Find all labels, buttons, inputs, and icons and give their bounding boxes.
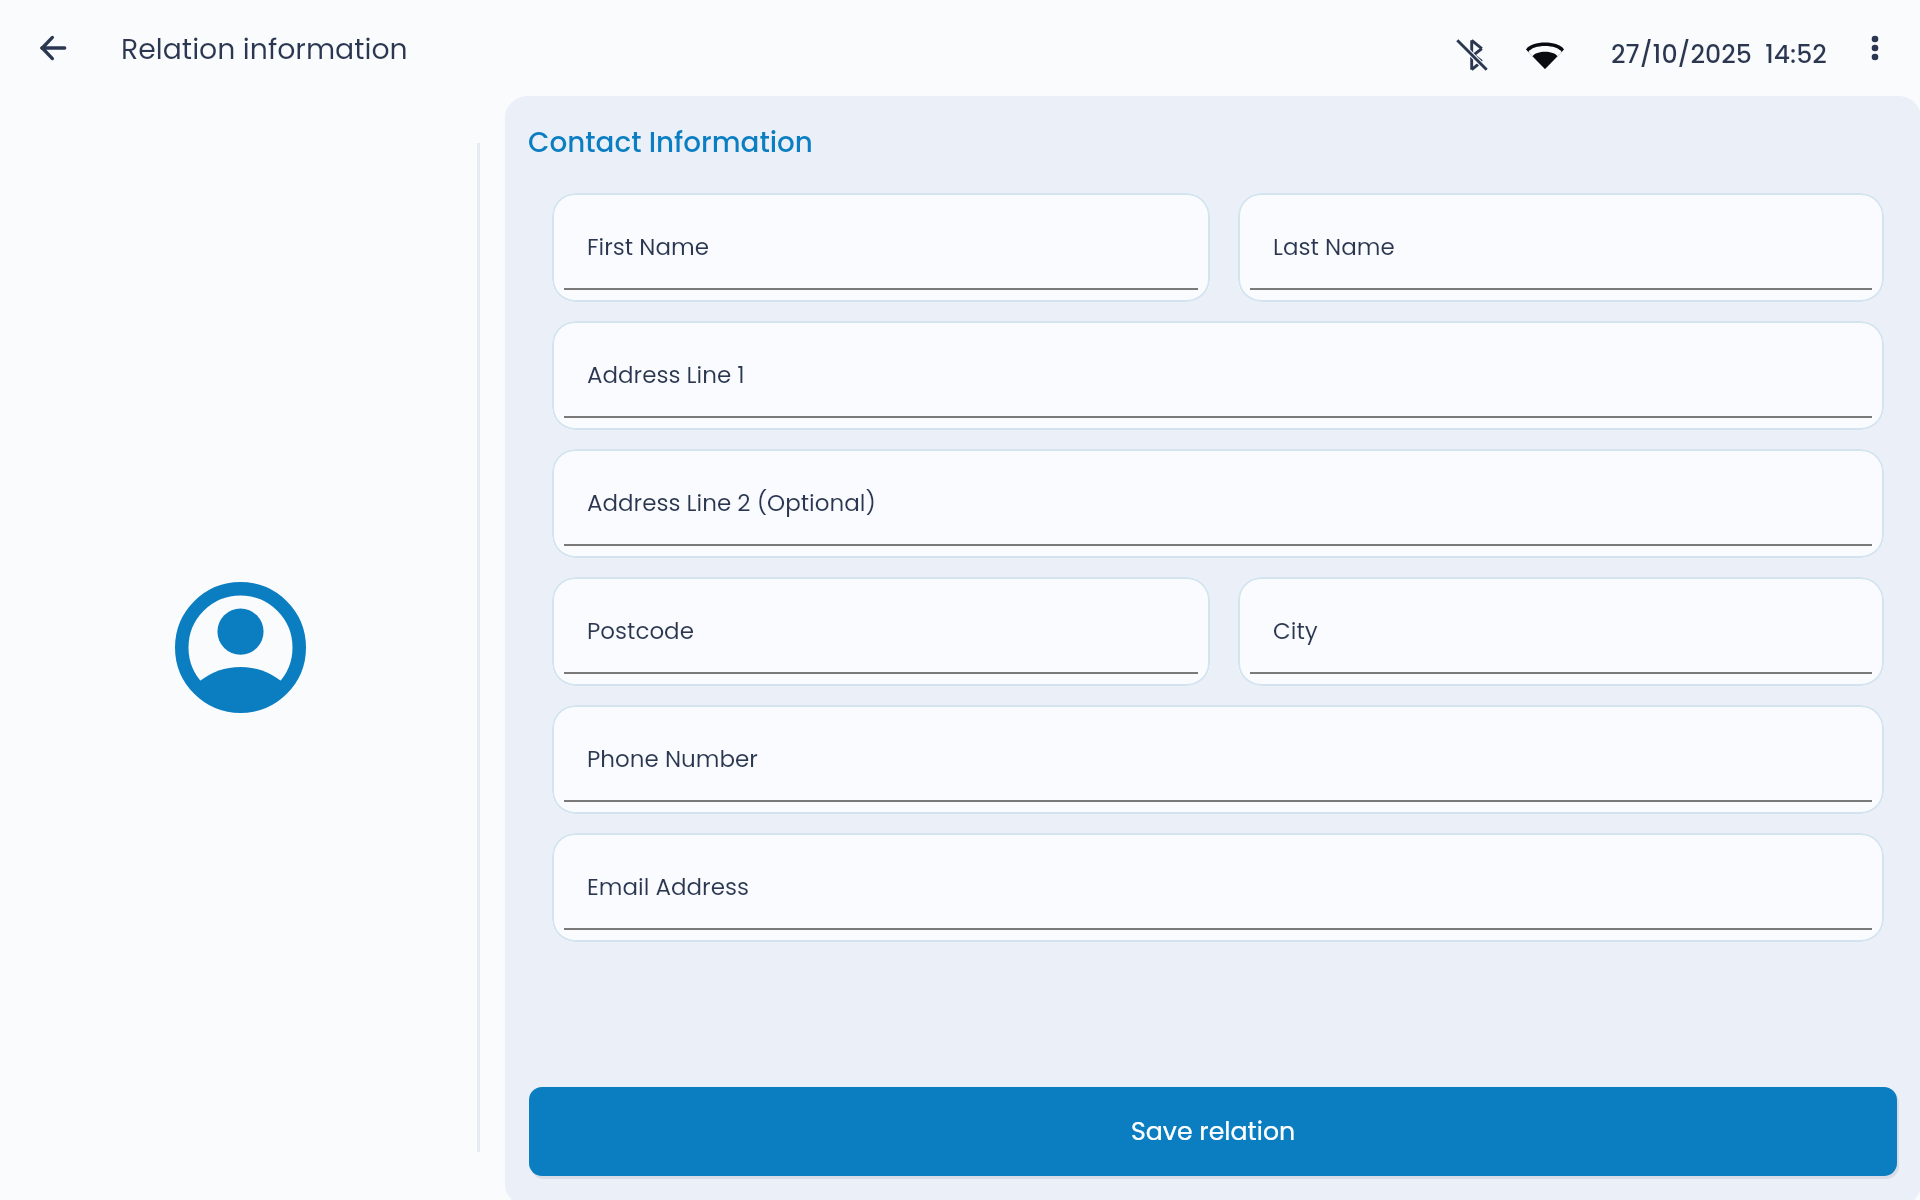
staticText: First Name bbox=[587, 231, 710, 263]
other: Wifi connected bbox=[1526, 41, 1564, 69]
staticText: Last Name bbox=[1273, 231, 1395, 263]
button[interactable]: Save relation bbox=[529, 1087, 1897, 1176]
staticText: Postcode bbox=[587, 615, 694, 647]
button[interactable]: Address Line 1 bbox=[552, 321, 1884, 430]
staticText: Relation information bbox=[121, 29, 408, 69]
button[interactable]: City bbox=[1238, 577, 1884, 686]
button[interactable]: More options bbox=[1851, 24, 1899, 72]
button[interactable]: Postcode bbox=[552, 577, 1210, 686]
staticText: Address Line 1 bbox=[587, 359, 745, 391]
staticText: Phone Number bbox=[587, 743, 758, 775]
button[interactable]: Phone Number bbox=[552, 705, 1884, 814]
button[interactable]: Address Line 2 (Optional) bbox=[552, 449, 1884, 558]
staticText: 27/10/2025 14:52 bbox=[1611, 37, 1827, 72]
staticText: Address Line 2 (Optional) bbox=[587, 487, 876, 519]
staticText: Email Address bbox=[587, 871, 749, 903]
staticText: Save relation bbox=[1131, 1114, 1296, 1149]
staticText: Contact Information bbox=[528, 123, 813, 162]
button[interactable]: First Name bbox=[552, 193, 1210, 302]
staticText: City bbox=[1273, 615, 1318, 647]
button[interactable]: Last Name bbox=[1238, 193, 1884, 302]
other: Bluetooth off bbox=[1457, 40, 1487, 70]
button[interactable]: Email Address bbox=[552, 833, 1884, 942]
button[interactable]: Back bbox=[29, 23, 77, 71]
